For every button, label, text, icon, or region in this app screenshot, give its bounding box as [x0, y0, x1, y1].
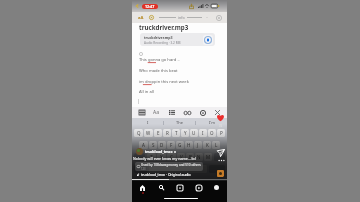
button[interactable]: truckload_tmcc — [136, 148, 208, 155]
button[interactable]: Reels — [173, 181, 186, 194]
staticText: B — [189, 154, 192, 160]
button[interactable]: Close — [212, 107, 223, 118]
button[interactable]: Shop — [192, 181, 205, 194]
button[interactable]: Attach — [197, 107, 208, 118]
button[interactable]: Markup — [182, 107, 193, 118]
button[interactable]: E — [154, 129, 162, 137]
button[interactable]: Like — [214, 111, 227, 124]
staticText: info — [178, 15, 185, 20]
button[interactable]: Delete — [214, 153, 225, 161]
staticText: truckload_tmcc · Original audio — [141, 172, 191, 177]
staticText: C — [170, 154, 173, 160]
button[interactable]: Shift — [134, 153, 145, 161]
staticText: W — [146, 130, 151, 136]
button[interactable]: B — [186, 153, 194, 161]
button[interactable]: truckdriver.mp3 — [140, 33, 215, 46]
button[interactable]: F — [167, 141, 175, 149]
button[interactable]: S — [149, 141, 157, 149]
staticText: Audio Recording · 3.2 MB — [144, 41, 181, 45]
staticText: truckdriver.mp3 — [144, 35, 173, 40]
button[interactable]: I'm — [196, 118, 227, 127]
button[interactable]: Used by 108dswagmoney and 510 others — [135, 162, 203, 171]
button[interactable]: Y — [181, 129, 189, 137]
button[interactable]: K — [203, 141, 211, 149]
staticText: L — [215, 142, 218, 148]
button[interactable]: Nobody will ever know my name... lol — [133, 156, 207, 161]
button[interactable]: Z — [147, 153, 156, 161]
button[interactable]: I — [132, 118, 163, 127]
staticText: 12:47 — [145, 4, 155, 9]
staticText: Used by 108dswagmoney and 510 others — [141, 163, 201, 167]
staticText: J — [197, 142, 199, 148]
button[interactable]: truckload_tmcc · Original audio — [137, 171, 207, 177]
staticText: Z — [150, 154, 153, 160]
staticText: 123 — [141, 167, 146, 171]
staticText: All in all — [139, 89, 154, 95]
staticText: H — [187, 142, 191, 148]
button[interactable]: The — [164, 118, 195, 127]
staticText: M — [206, 154, 211, 160]
staticText: ·· — [206, 15, 209, 20]
staticText: O — [210, 130, 214, 136]
staticText: truckdriver.mp3 — [139, 23, 189, 31]
button[interactable]: Q — [134, 129, 143, 137]
staticText: R — [166, 130, 169, 136]
button[interactable]: W — [144, 129, 153, 137]
button[interactable]: U — [190, 129, 198, 137]
staticText: im droppin this next week — [139, 79, 189, 85]
staticText: E — [157, 130, 160, 136]
button[interactable]: R — [163, 129, 171, 137]
staticText: D — [160, 142, 164, 148]
button[interactable]: G — [176, 141, 184, 149]
button[interactable]: D — [158, 141, 166, 149]
staticText: I — [202, 130, 204, 136]
button[interactable]: H — [185, 141, 193, 149]
staticText: Aa — [153, 109, 160, 116]
button[interactable]: J — [194, 141, 202, 149]
button[interactable]: P — [217, 129, 225, 137]
staticText: N — [197, 154, 201, 160]
staticText: S — [152, 142, 155, 148]
button[interactable]: Audio cover — [216, 169, 224, 177]
button[interactable]: C — [167, 153, 176, 161]
staticText: X — [160, 154, 163, 160]
button[interactable]: M — [204, 153, 212, 161]
staticText: F — [170, 142, 173, 148]
staticText: U — [192, 130, 196, 136]
button[interactable]: Table — [136, 107, 147, 118]
button[interactable]: Share — [215, 147, 227, 159]
staticText: 74 — [219, 124, 223, 128]
button[interactable]: Search — [155, 181, 168, 194]
staticText: Y — [184, 130, 187, 136]
button[interactable]: Checklist — [166, 107, 177, 118]
staticText: Q — [137, 130, 141, 136]
button[interactable]: Space — [149, 165, 207, 173]
staticText: The — [176, 120, 183, 125]
staticText: P — [220, 130, 223, 136]
staticText: Nobody will ever know my name... lol — [133, 156, 196, 161]
staticText: aA — [138, 15, 144, 21]
button[interactable]: Format — [151, 107, 162, 118]
staticText: truckload_tmcc — [145, 149, 173, 154]
staticText: I — [147, 120, 149, 125]
staticText: K — [206, 142, 209, 148]
staticText: Who made this beat — [139, 68, 178, 74]
button[interactable]: Numbers — [134, 165, 147, 173]
button[interactable]: Home — [136, 181, 149, 194]
button[interactable]: V — [177, 153, 185, 161]
button[interactable]: Profile — [210, 181, 223, 194]
button[interactable]: N — [195, 153, 203, 161]
staticText: I'm — [209, 120, 215, 125]
staticText: G — [178, 142, 182, 148]
button[interactable]: L — [212, 141, 220, 149]
button[interactable]: I — [199, 129, 207, 137]
staticText: V — [180, 154, 183, 160]
button[interactable]: T — [172, 129, 180, 137]
button[interactable]: A — [139, 141, 148, 149]
button[interactable]: Return — [209, 165, 225, 173]
staticText: This gonna go hard .. — [139, 57, 180, 63]
button[interactable]: O — [208, 129, 216, 137]
button[interactable]: X — [157, 153, 166, 161]
button[interactable]: More options — [215, 154, 227, 166]
staticText: T — [175, 130, 178, 136]
